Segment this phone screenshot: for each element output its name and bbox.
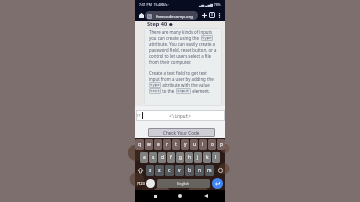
- button[interactable]: j: [194, 152, 202, 163]
- staticText: x: [158, 167, 161, 174]
- staticText: m: [207, 167, 212, 174]
- button[interactable]: Home: [174, 190, 186, 202]
- button[interactable]: f: [167, 152, 175, 163]
- staticText: y: [184, 141, 187, 148]
- button[interactable]: e: [154, 139, 162, 150]
- button[interactable]: Emoji: [146, 179, 155, 188]
- staticText: c: [168, 167, 171, 174]
- staticText: p: [220, 141, 223, 148]
- staticText: r: [166, 141, 168, 148]
- staticText: password field, reset button, or a: [149, 47, 217, 53]
- staticText: type: [150, 82, 160, 88]
- staticText: 0: [211, 13, 213, 17]
- button[interactable]: Recents: [149, 190, 161, 202]
- staticText: t: [175, 141, 177, 148]
- button[interactable]: English: [157, 179, 210, 188]
- staticText: from their computer.: [149, 59, 192, 65]
- staticText: s: [152, 154, 155, 161]
- staticText: attribute. You can easily create a: [149, 41, 215, 47]
- staticText: attribute with the value: [161, 82, 210, 88]
- staticText: you can create using the: [149, 35, 201, 41]
- staticText: a: [143, 154, 146, 161]
- button[interactable]: a: [140, 152, 148, 163]
- staticText: l: [215, 154, 217, 161]
- staticText: g: [179, 154, 182, 161]
- button[interactable]: More options: [216, 12, 223, 19]
- staticText: Check Your Code: [163, 130, 200, 136]
- staticText: k: [206, 154, 209, 161]
- staticText: j: [197, 154, 199, 161]
- button[interactable]: ?123: [135, 178, 146, 189]
- staticText: w: [147, 141, 151, 148]
- button[interactable]: New tab: [200, 11, 208, 19]
- staticText: There are many kinds of inputs: [149, 29, 213, 35]
- button[interactable]: o: [208, 139, 216, 150]
- staticText: element.: [191, 88, 211, 94]
- staticText: control to let users select a file: [149, 53, 211, 59]
- button[interactable]: d: [158, 152, 166, 163]
- staticText: English: [177, 181, 190, 186]
- staticText: type: [202, 35, 212, 41]
- button[interactable]: y: [181, 139, 189, 150]
- button[interactable]: i: [199, 139, 207, 150]
- staticText: 27: [136, 113, 141, 118]
- staticText: z: [149, 167, 152, 174]
- button[interactable]: Fc: [145, 11, 198, 20]
- button[interactable]: Check Your Code: [148, 128, 215, 137]
- staticText: ▂▄ ▂▄▆ 78%: [199, 2, 221, 7]
- button[interactable]: v: [175, 165, 184, 176]
- button[interactable]: Home: [137, 11, 145, 19]
- button[interactable]: q: [135, 139, 144, 150]
- button[interactable]: n: [195, 165, 204, 176]
- staticText: n: [198, 167, 201, 174]
- staticText: e: [157, 141, 160, 148]
- staticText: b: [188, 167, 191, 174]
- staticText: freecodecamp.org: [156, 13, 193, 19]
- button[interactable]: u: [190, 139, 198, 150]
- button[interactable]: b: [185, 165, 194, 176]
- staticText: 7:31 PM 15.4KB/s ·: [139, 2, 170, 7]
- button[interactable]: g: [176, 152, 184, 163]
- button[interactable]: Backspace: [215, 165, 225, 176]
- staticText: input: [177, 88, 190, 94]
- staticText: ?123: [137, 181, 145, 186]
- button[interactable]: Shift: [135, 165, 145, 176]
- button[interactable]: t: [172, 139, 180, 150]
- staticText: text: [150, 88, 160, 94]
- staticText: f: [170, 154, 172, 161]
- button[interactable]: w: [145, 139, 153, 150]
- staticText: <\input>: [169, 113, 192, 119]
- button[interactable]: m: [205, 165, 214, 176]
- staticText: input from a user by adding the: [149, 76, 214, 82]
- staticText: h: [188, 154, 191, 161]
- staticText: q: [138, 141, 141, 148]
- button[interactable]: r: [163, 139, 171, 150]
- button[interactable]: p: [217, 139, 225, 150]
- button[interactable]: h: [185, 152, 193, 163]
- button[interactable]: s: [149, 152, 157, 163]
- button[interactable]: c: [165, 165, 174, 176]
- button[interactable]: Enter: [212, 178, 223, 189]
- staticText: i: [202, 141, 204, 148]
- staticText: Create a text field to get text: [149, 70, 207, 76]
- button[interactable]: z: [146, 165, 154, 176]
- button[interactable]: k: [203, 152, 211, 163]
- button[interactable]: Tabs: [208, 11, 216, 19]
- staticText: v: [178, 167, 181, 174]
- staticText: o: [211, 141, 214, 148]
- staticText: Fc: [148, 15, 151, 19]
- staticText: d: [161, 154, 164, 161]
- button[interactable]: Back: [200, 190, 212, 202]
- staticText: to the: [161, 88, 176, 94]
- button[interactable]: x: [155, 165, 164, 176]
- button[interactable]: l: [212, 152, 220, 163]
- staticText: u: [193, 141, 196, 148]
- staticText: Step 40: [147, 20, 168, 28]
